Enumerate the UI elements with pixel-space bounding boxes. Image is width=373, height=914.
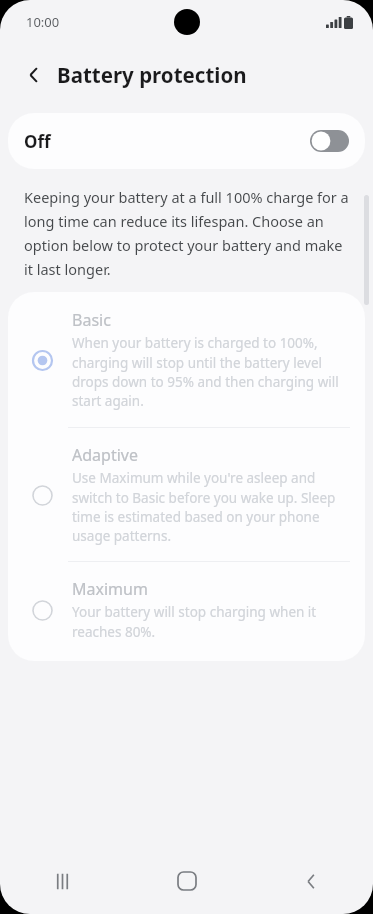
staticText: Basic [72, 309, 111, 331]
button[interactable]: Off [8, 113, 365, 169]
button[interactable]: Home [125, 848, 249, 914]
staticText: Maximum [72, 578, 148, 600]
staticText: Keeping your battery at a full 100% char… [24, 187, 351, 279]
staticText: When your battery is charged to 100%, ch… [72, 334, 349, 410]
button[interactable]: Back [13, 54, 55, 96]
staticText: Your battery will stop charging when it … [72, 603, 349, 641]
staticText: Off [24, 130, 51, 153]
staticText: Adaptive [72, 444, 138, 466]
staticText: 10:00 [26, 13, 60, 31]
button[interactable]: Recents [0, 848, 125, 914]
button[interactable]: Basic [8, 292, 365, 427]
button[interactable]: Maximum [8, 562, 365, 661]
button[interactable]: Back [249, 848, 373, 914]
button[interactable]: Adaptive [8, 428, 365, 561]
staticText: Use Maximum while you're asleep and swit… [72, 469, 349, 545]
staticText: Battery protection [57, 61, 247, 89]
